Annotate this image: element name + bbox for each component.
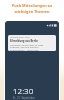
button[interactable]: NACHRICHTEN · jetzt bbox=[8, 35, 56, 51]
staticText: Push Mitteilungen zu wichtigen Themen bbox=[0, 3, 64, 14]
staticText: NACHRICHTEN · jetzt bbox=[10, 36, 30, 39]
staticText: Wichtige Nachrichten zu allen Themen, di… bbox=[10, 43, 44, 51]
staticText: 12:30 bbox=[13, 85, 34, 96]
staticText: Fr., 21. September bbox=[13, 96, 35, 100]
other: Status bbox=[47, 24, 57, 27]
staticText: Eilmeldung aus Berlin bbox=[10, 39, 39, 43]
